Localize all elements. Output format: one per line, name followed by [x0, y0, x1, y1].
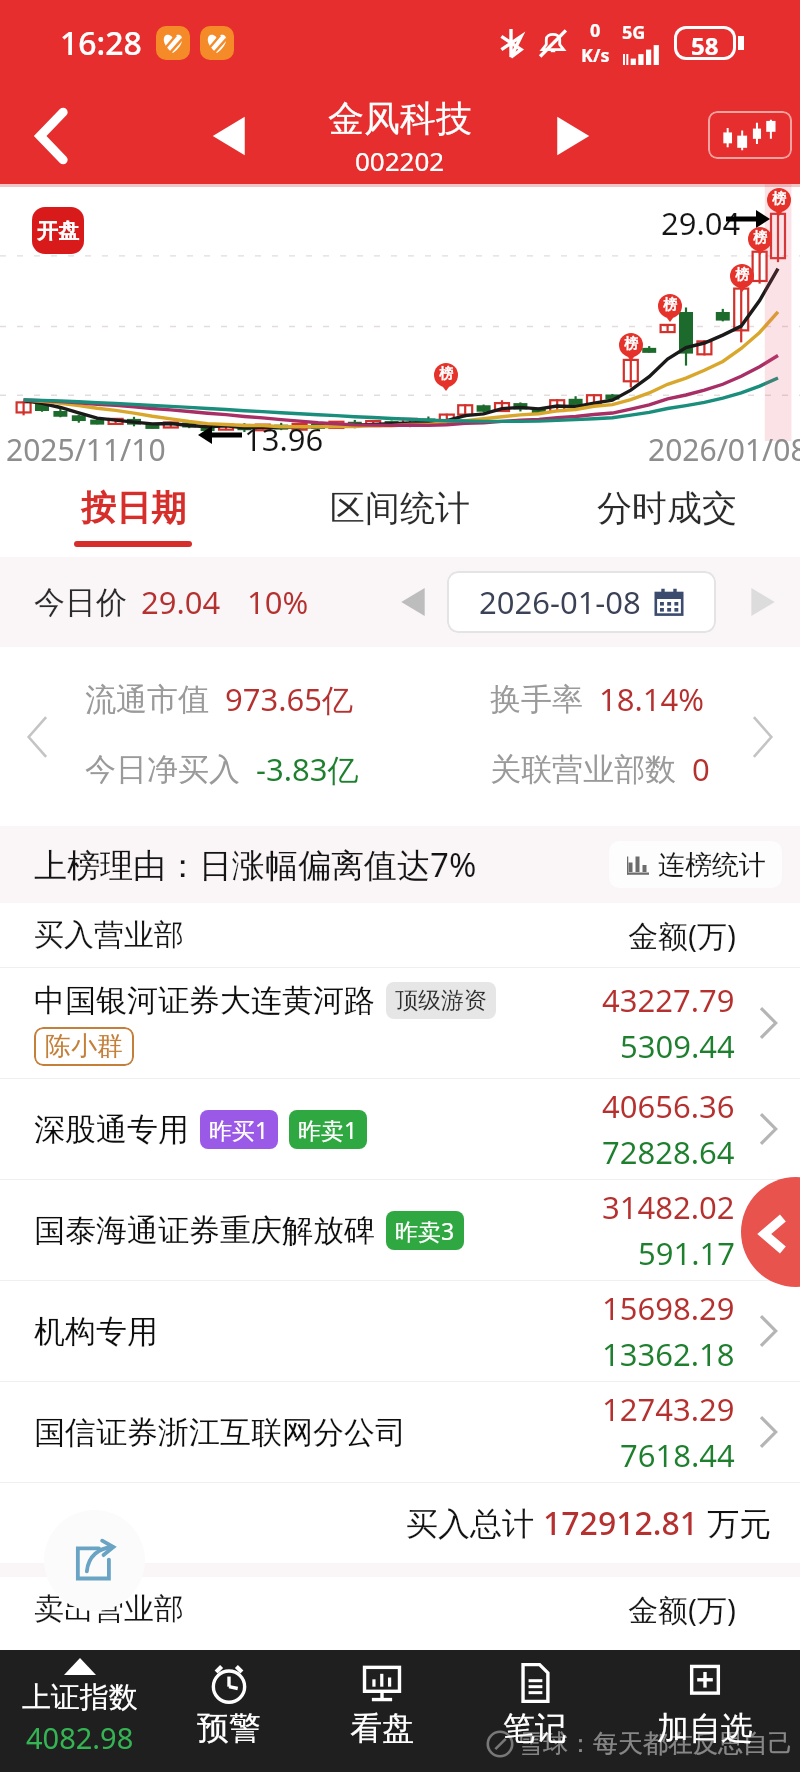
staticText: 买入总计: [406, 1501, 543, 1545]
staticText: 关联营业部数: [490, 750, 676, 789]
staticText: 973.65亿: [225, 678, 353, 720]
button[interactable]: 后一天: [732, 571, 794, 633]
button[interactable]: K线图: [708, 111, 792, 159]
staticText: 18.14%: [599, 678, 704, 720]
button[interactable]: 看盘: [307, 1660, 457, 1762]
staticText: 40656.36: [602, 1085, 735, 1127]
button[interactable]: 国信证券浙江互联网分公司: [0, 1382, 800, 1482]
staticText: 0: [692, 748, 710, 790]
button[interactable]: 中国银河证券大连黄河路: [0, 968, 800, 1078]
staticText: 金额(万): [628, 1589, 736, 1630]
staticText: 看盘: [350, 1708, 414, 1748]
staticText: 12743.29: [602, 1388, 735, 1430]
staticText: 榜: [439, 365, 453, 383]
staticText: 43227.79: [602, 979, 735, 1021]
staticText: 今日价: [34, 583, 127, 622]
staticText: 机构专用: [34, 1312, 158, 1351]
staticText: 榜: [735, 266, 749, 284]
staticText: 区间统计: [330, 486, 470, 530]
staticText: 4082.98: [26, 1718, 134, 1757]
staticText: 昨卖1: [298, 1114, 358, 1145]
button[interactable]: 加自选: [630, 1660, 780, 1762]
staticText: 0: [590, 18, 601, 43]
staticText: 预警: [197, 1708, 261, 1748]
staticText: 连榜统计: [658, 848, 766, 882]
staticText: 顶级游资: [395, 986, 487, 1015]
staticText: 5G: [622, 20, 646, 45]
staticText: 上证指数: [22, 1679, 138, 1716]
button[interactable]: 连榜统计: [609, 841, 782, 888]
button[interactable]: 分时成交: [533, 468, 800, 557]
staticText: K/s: [581, 43, 610, 68]
staticText: 2026-01-08: [479, 581, 641, 623]
button[interactable]: 深股通专用: [0, 1079, 800, 1179]
staticText: 雪球：每天都在反思自己: [518, 1728, 793, 1759]
staticText: 分时成交: [597, 486, 737, 530]
button[interactable]: 分享: [44, 1510, 145, 1611]
staticText: 今日净买入: [85, 750, 240, 789]
staticText: 29.04: [141, 581, 221, 623]
staticText: 榜: [772, 190, 786, 208]
staticText: 卖出营业部: [34, 1590, 184, 1628]
staticText: 2026/01/08: [648, 429, 800, 470]
staticText: 榜: [624, 335, 638, 353]
button[interactable]: 下一只: [539, 101, 609, 171]
staticText: 金风科技: [328, 96, 472, 141]
staticText: 国信证券浙江互联网分公司: [34, 1413, 406, 1452]
button[interactable]: 返回: [11, 96, 91, 176]
staticText: 中国银河证券大连黄河路: [34, 981, 375, 1020]
staticText: -3.83亿: [256, 748, 359, 790]
staticText: 换手率: [490, 680, 583, 719]
button[interactable]: 预警: [154, 1660, 304, 1762]
staticText: 10%: [247, 581, 309, 623]
staticText: 7618.44: [620, 1434, 735, 1476]
staticText: 昨卖3: [395, 1215, 455, 1246]
staticText: 002202: [355, 143, 445, 178]
button[interactable]: 上一只: [193, 101, 263, 171]
staticText: 13362.18: [602, 1333, 735, 1375]
staticText: 国泰海通证券重庆解放碑: [34, 1211, 375, 1250]
staticText: 榜: [753, 229, 767, 247]
staticText: 13.96: [244, 418, 324, 460]
staticText: 72828.64: [602, 1131, 735, 1173]
button[interactable]: 笔记: [460, 1660, 610, 1762]
staticText: 591.17: [638, 1232, 735, 1274]
button[interactable]: 2026-01-08: [447, 571, 716, 633]
staticText: 上榜理由：日涨幅偏离值达7%: [34, 842, 477, 887]
button[interactable]: 前一天: [382, 571, 444, 633]
staticText: 172912.81: [543, 1501, 699, 1545]
staticText: 加自选: [657, 1708, 753, 1748]
button[interactable]: 上证指数: [0, 1658, 160, 1764]
button[interactable]: 区间统计: [266, 468, 533, 557]
staticText: 榜: [663, 296, 677, 314]
button[interactable]: 机构专用: [0, 1281, 800, 1381]
staticText: 深股通专用: [34, 1110, 189, 1149]
staticText: 流通市值: [85, 680, 209, 719]
staticText: 16:28: [60, 21, 142, 65]
button[interactable]: 返回: [741, 1177, 800, 1287]
button[interactable]: 国泰海通证券重庆解放碑: [0, 1180, 800, 1280]
staticText: 2025/11/10: [6, 429, 166, 470]
staticText: 按日期: [81, 486, 186, 530]
staticText: 万元: [699, 1501, 772, 1545]
staticText: 买入营业部: [34, 916, 184, 954]
staticText: 58: [691, 29, 719, 57]
staticText: 31482.02: [602, 1186, 735, 1228]
staticText: 笔记: [503, 1708, 567, 1748]
staticText: 5309.44: [620, 1025, 735, 1067]
staticText: 陈小群: [45, 1030, 123, 1063]
staticText: 昨买1: [209, 1114, 269, 1145]
staticText: 开盘: [37, 218, 79, 244]
staticText: 29.04: [661, 202, 741, 244]
button[interactable]: 按日期: [0, 468, 266, 557]
staticText: 金额(万): [628, 915, 736, 956]
staticText: 15698.29: [602, 1287, 735, 1329]
